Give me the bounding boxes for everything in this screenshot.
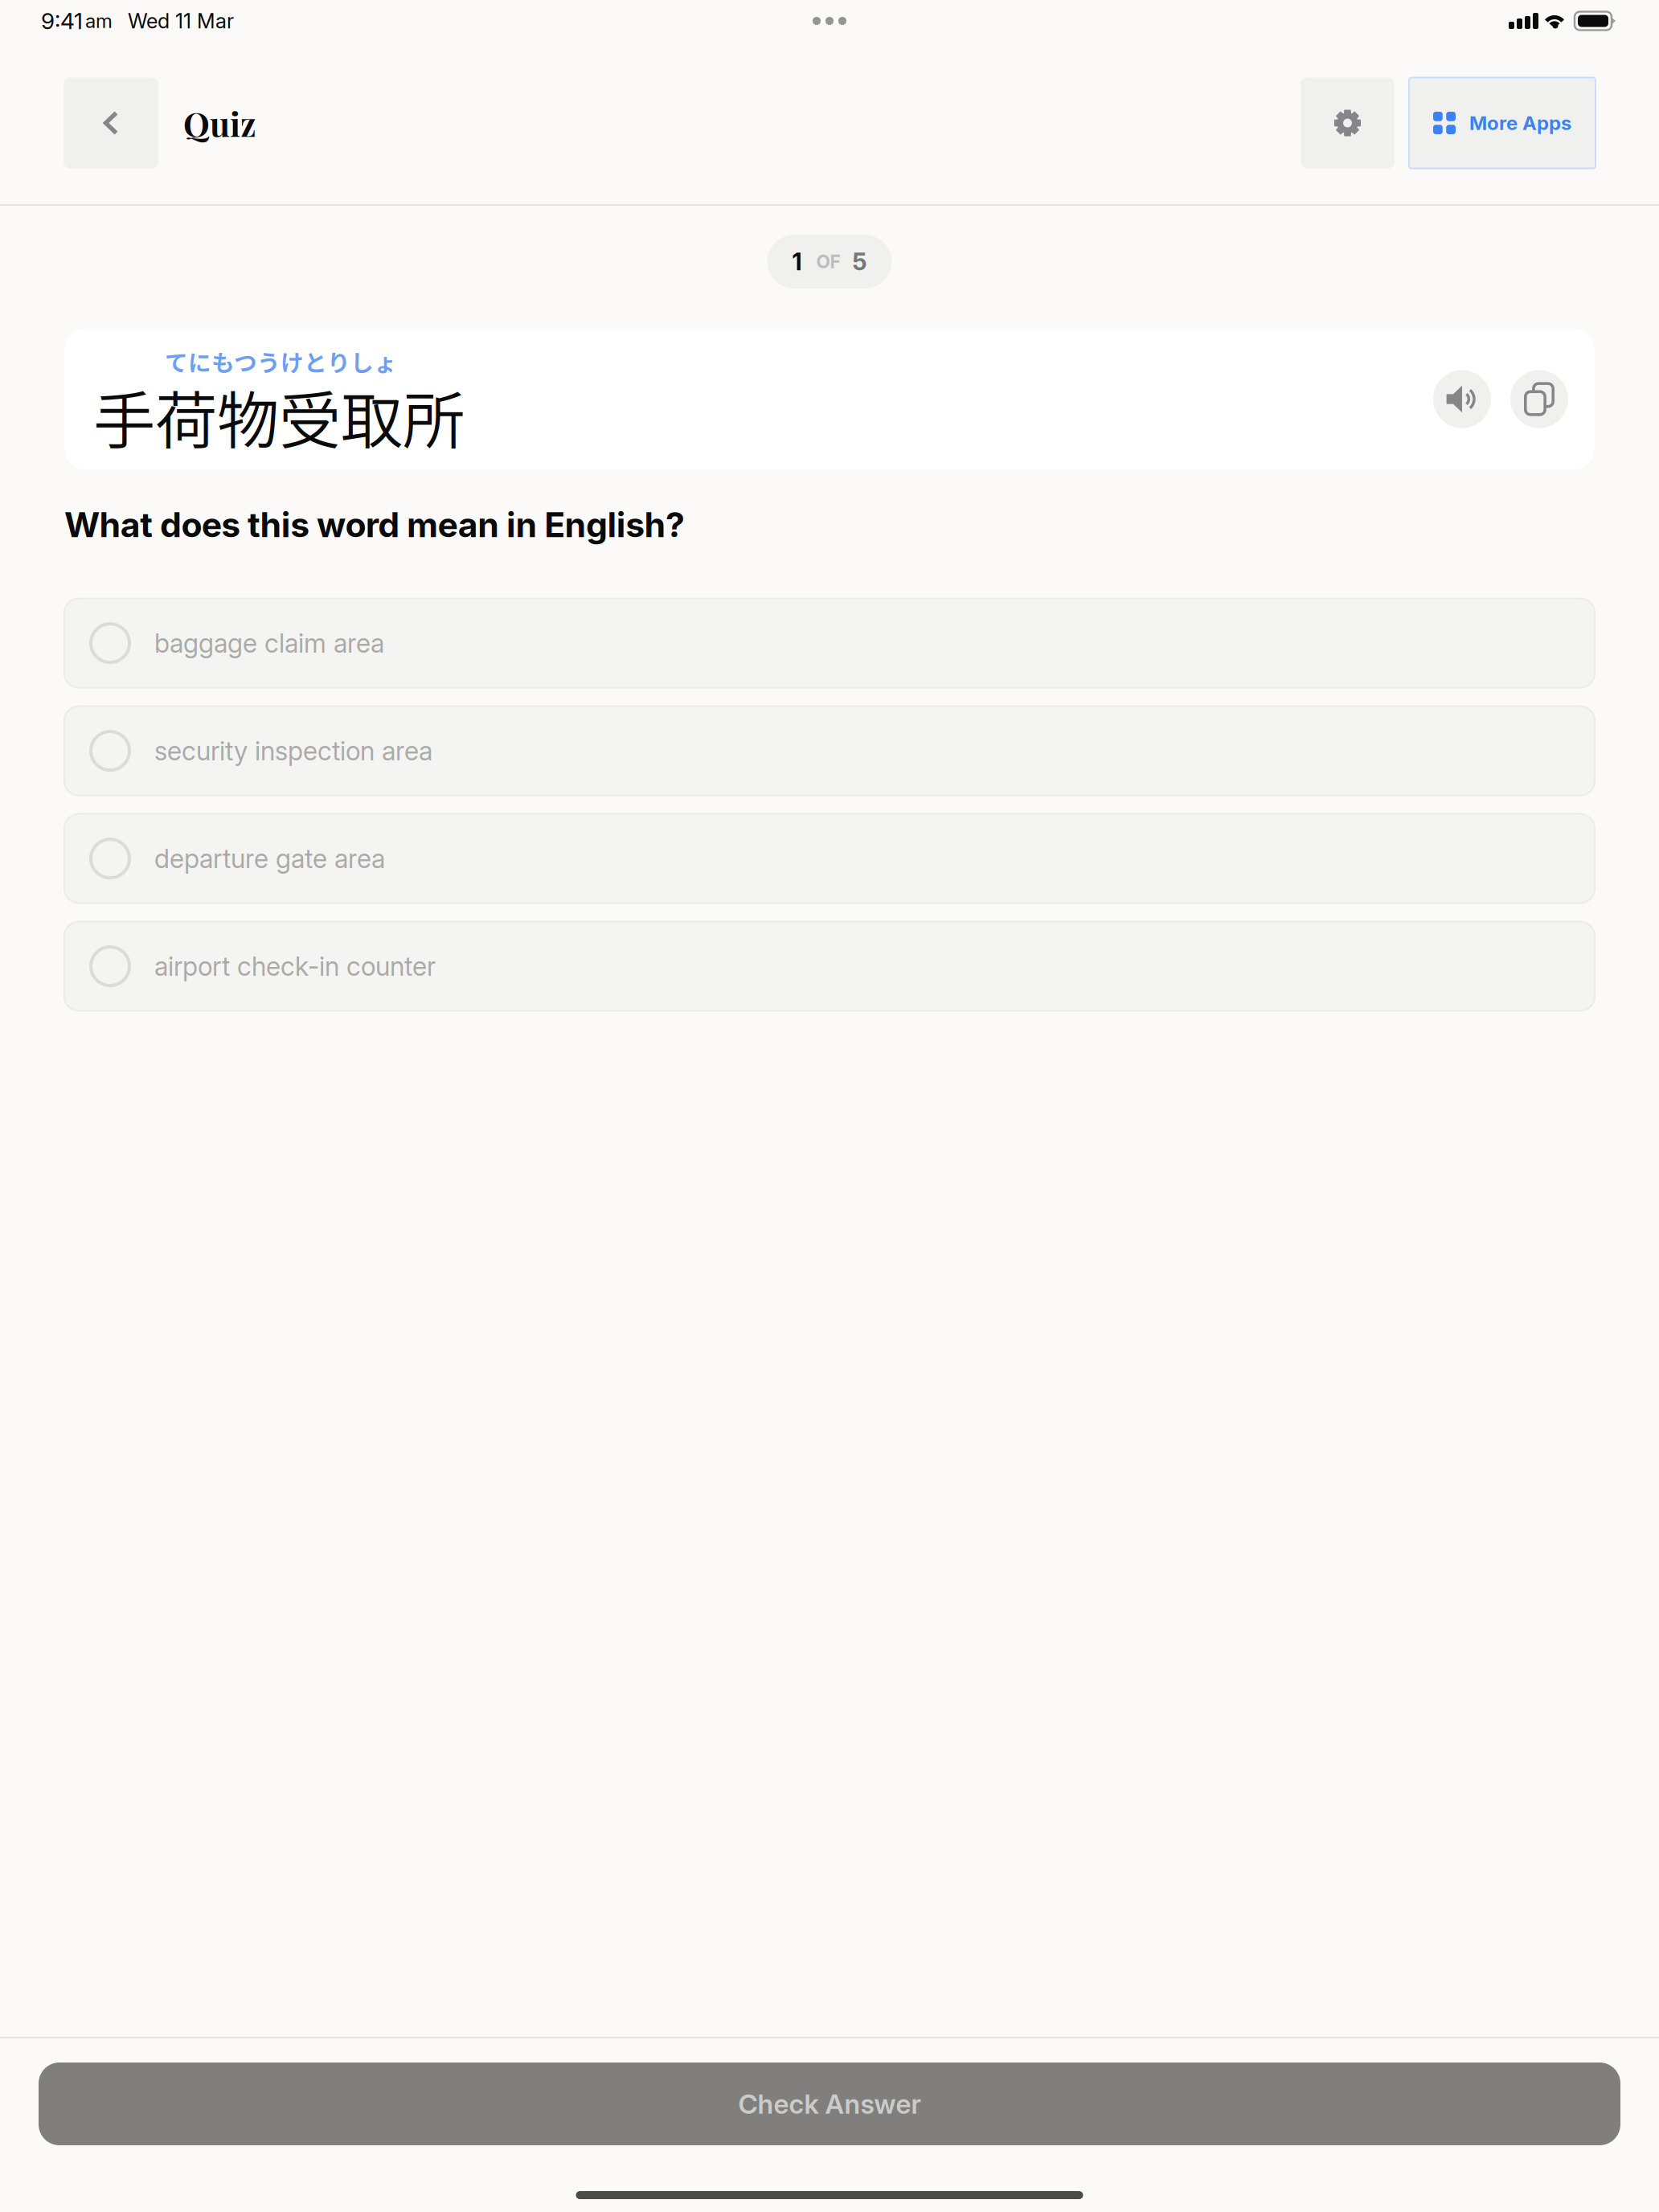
button[interactable]: Back [63,78,158,168]
staticText: What does this word mean in English? [64,504,685,545]
button[interactable]: Play pronunciation [1433,370,1491,428]
staticText: 9:41 [41,7,83,35]
staticText: am [85,9,113,33]
staticText: More Apps [1469,111,1571,135]
button[interactable]: Copy word [1510,370,1568,428]
staticText: てにもつうけとりしょ [165,345,397,378]
button[interactable]: Check Answer [39,2062,1620,2145]
button[interactable]: airport check-in counter [64,922,1595,1011]
staticText: 1 [792,247,802,276]
staticText: departure gate area [154,843,385,874]
staticText: 5 [852,247,867,276]
staticText: Wed 11 Mar [128,9,234,33]
staticText: OF [816,251,840,273]
staticText: baggage claim area [154,627,384,659]
staticText: airport check-in counter [154,950,436,982]
staticText: Quiz [183,101,256,145]
button[interactable]: baggage claim area [64,598,1595,688]
staticText: 手荷物受取所 [93,371,465,461]
button[interactable]: security inspection area [64,706,1595,795]
button[interactable]: More Apps [1409,78,1596,168]
staticText: Check Answer [738,2088,921,2120]
button[interactable]: Settings [1301,78,1395,168]
button[interactable]: departure gate area [64,814,1595,903]
staticText: security inspection area [154,735,432,767]
